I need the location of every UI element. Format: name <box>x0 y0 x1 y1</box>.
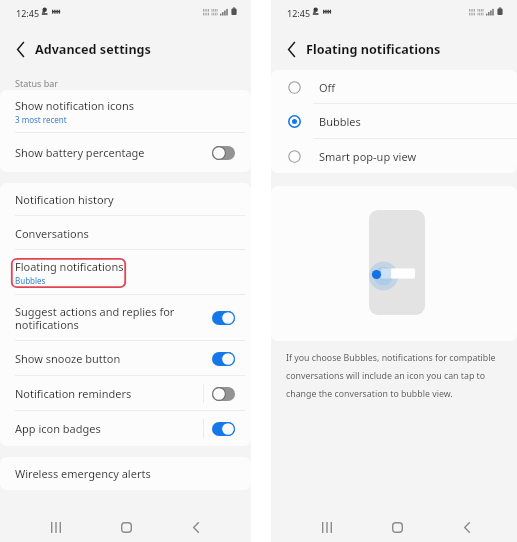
staticText: 3 most recent <box>15 114 67 125</box>
button[interactable]: Off <box>271 70 517 104</box>
button[interactable]: Show battery percentage <box>0 133 251 172</box>
staticText: Bubbles <box>319 114 361 129</box>
staticText: Show battery percentage <box>15 145 145 160</box>
staticText: 12:45 <box>16 7 40 19</box>
button[interactable]: Back <box>451 513 483 541</box>
button[interactable]: Wireless emergency alerts <box>0 457 251 490</box>
button[interactable]: Recent apps <box>311 513 343 541</box>
staticText: App icon badges <box>15 421 101 436</box>
staticText: Advanced settings <box>35 41 151 58</box>
staticText: Bubbles <box>15 275 46 286</box>
button[interactable]: Home <box>381 513 413 541</box>
staticText: Notification reminders <box>15 386 132 401</box>
button[interactable]: Show notification icons <box>0 90 251 133</box>
button[interactable]: Show snooze button <box>0 341 251 376</box>
staticText: Floating notifications <box>15 259 124 274</box>
staticText: Smart pop-up view <box>319 149 417 164</box>
staticText: If you choose Bubbles, notifications for… <box>286 352 496 400</box>
staticText: Show notification icons <box>15 98 135 113</box>
button[interactable]: Navigate up <box>8 37 32 61</box>
button[interactable]: Floating notifications <box>0 250 251 295</box>
button[interactable]: Suggest actions and replies for notifica… <box>0 295 251 341</box>
button[interactable]: Bubbles <box>271 104 517 139</box>
staticText: Suggest actions and replies for notifica… <box>15 304 175 332</box>
staticText: Show snooze button <box>15 351 121 366</box>
button[interactable]: Notification reminders <box>0 376 251 411</box>
staticText: Conversations <box>15 226 89 241</box>
staticText: Wireless emergency alerts <box>15 466 151 481</box>
staticText: Off <box>319 80 336 95</box>
button[interactable]: Notification history <box>0 183 251 216</box>
button[interactable]: Conversations <box>0 216 251 250</box>
button[interactable]: Back <box>180 513 212 541</box>
button[interactable]: Navigate up <box>279 37 303 61</box>
staticText: Floating notifications <box>306 41 441 58</box>
staticText: 12:45 <box>287 7 311 19</box>
button[interactable]: App icon badges <box>0 411 251 446</box>
button[interactable]: Smart pop-up view <box>271 139 517 173</box>
button[interactable]: Recent apps <box>40 513 72 541</box>
staticText: Status bar <box>15 77 59 89</box>
button[interactable]: Home <box>110 513 142 541</box>
staticText: Notification history <box>15 192 114 207</box>
